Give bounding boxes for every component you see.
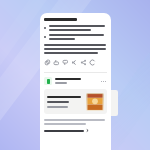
button[interactable]: Read aloud [71, 59, 78, 66]
button[interactable]: Learn about ad personalization [44, 129, 89, 132]
button[interactable]: More options [100, 78, 107, 85]
button[interactable]: More options [44, 77, 107, 85]
button[interactable]: Regenerate [89, 59, 96, 66]
button[interactable]: Like [53, 59, 60, 66]
button[interactable]: Copy [44, 59, 51, 66]
button[interactable] [44, 89, 107, 114]
button[interactable]: Dislike [62, 59, 69, 66]
button[interactable]: Share [80, 59, 87, 66]
